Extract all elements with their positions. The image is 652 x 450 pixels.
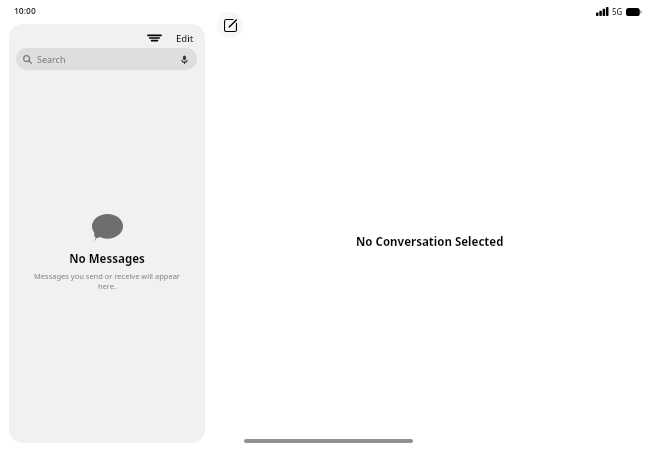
- staticText: Search: [37, 53, 66, 65]
- staticText: 5G: [612, 6, 623, 17]
- staticText: Messages you send or receive will appear…: [31, 271, 183, 291]
- staticText: No Messages: [69, 251, 145, 267]
- button[interactable]: Voice search: [178, 53, 190, 65]
- staticText: No Conversation Selected: [356, 234, 504, 250]
- button[interactable]: Search: [16, 48, 197, 70]
- staticText: Edit: [176, 32, 194, 45]
- button[interactable]: Edit: [171, 28, 199, 49]
- staticText: 10:00: [14, 5, 36, 17]
- button[interactable]: Filter: [141, 25, 167, 51]
- button[interactable]: Compose new message: [217, 12, 243, 38]
